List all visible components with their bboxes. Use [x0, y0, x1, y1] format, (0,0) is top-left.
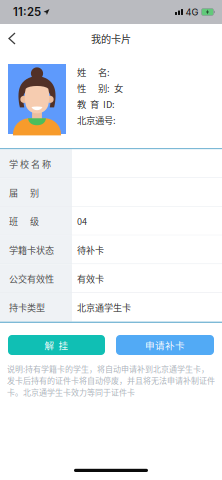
staticText: 届 别	[9, 186, 39, 199]
staticText: 有效卡	[77, 272, 104, 285]
button[interactable]: Back	[0, 24, 24, 53]
staticText: 班 级	[9, 215, 39, 228]
staticText: 公交有效性	[9, 272, 54, 285]
staticText: 申请补卡	[145, 338, 185, 352]
staticText: 我的卡片	[91, 31, 131, 46]
staticText: 北京通学生卡	[77, 301, 131, 314]
staticText: 4G	[185, 6, 198, 18]
staticText: 04	[77, 215, 87, 228]
staticText: 北京通号:	[77, 113, 116, 127]
staticText: 解 挂	[44, 338, 68, 352]
staticText: 说明:持有学籍卡的学生，将自动申请补到北京通学生卡，发卡后持有的证件卡将自动停废…	[7, 363, 215, 398]
staticText: 学籍卡状态	[9, 243, 54, 256]
staticText: 持卡类型	[9, 301, 45, 314]
staticText: 教 育 ID:	[77, 97, 115, 111]
button[interactable]: 解 挂	[8, 335, 105, 355]
staticText: 11:25	[13, 5, 41, 19]
staticText: 待补卡	[77, 243, 104, 256]
staticText: 姓 名:	[77, 65, 110, 79]
staticText: 性 别: 女	[77, 81, 123, 95]
button[interactable]: 申请补卡	[116, 335, 214, 355]
staticText: 学 校 名 称	[9, 157, 51, 170]
